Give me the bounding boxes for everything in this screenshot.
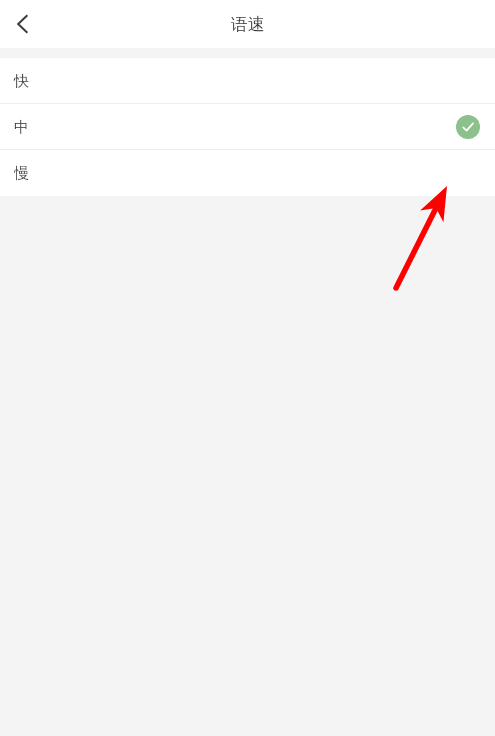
staticText: 语速 [231,14,265,35]
button[interactable]: 中 [0,104,495,150]
button[interactable]: 快 [0,58,495,104]
staticText: 中 [14,118,29,137]
staticText: 慢 [14,164,29,183]
button[interactable]: Back [0,1,46,47]
button[interactable]: 慢 [0,150,495,196]
staticText: 快 [14,72,29,91]
